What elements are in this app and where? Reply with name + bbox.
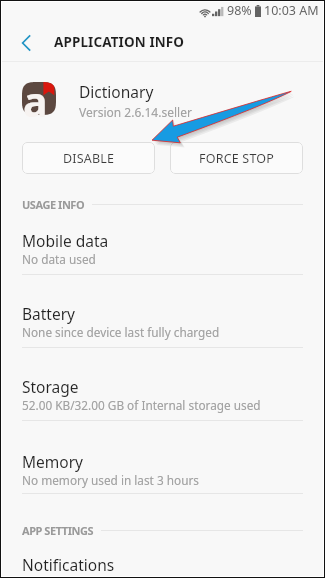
staticText: Allowed [22, 575, 66, 578]
staticText: 10:03 AM [264, 2, 319, 19]
staticText: Memory [22, 451, 83, 472]
staticText: APPLICATION INFO [54, 33, 185, 51]
staticText: APP SETTINGS [22, 523, 94, 538]
button[interactable]: Back [2, 22, 46, 61]
staticText: Battery [22, 303, 76, 324]
staticText: 52.00 KB/32.00 GB of Internal storage us… [22, 397, 261, 413]
staticText: DISABLE [63, 150, 115, 167]
staticText: FORCE STOP [199, 150, 275, 167]
staticText: None since device last fully charged [22, 324, 220, 340]
staticText: USAGE INFO [22, 197, 85, 212]
staticText: Notifications [22, 554, 115, 575]
staticText: a [23, 73, 48, 129]
staticText: Dictionary [79, 81, 154, 102]
staticText: Storage [22, 376, 79, 397]
staticText: No memory used in last 3 hours [22, 472, 199, 488]
button[interactable]: Memory [2, 423, 323, 495]
button[interactable]: DISABLE [22, 142, 155, 174]
button[interactable]: Notifications [2, 547, 323, 578]
button[interactable]: Mobile data [2, 220, 323, 275]
staticText: Version 2.6.14.seller [79, 104, 192, 120]
button[interactable]: FORCE STOP [170, 142, 303, 174]
staticText: No data used [22, 251, 96, 267]
button[interactable]: Storage [2, 350, 323, 422]
staticText: Mobile data [22, 230, 109, 251]
staticText: 98% [227, 2, 252, 19]
button[interactable]: Battery [2, 277, 323, 349]
